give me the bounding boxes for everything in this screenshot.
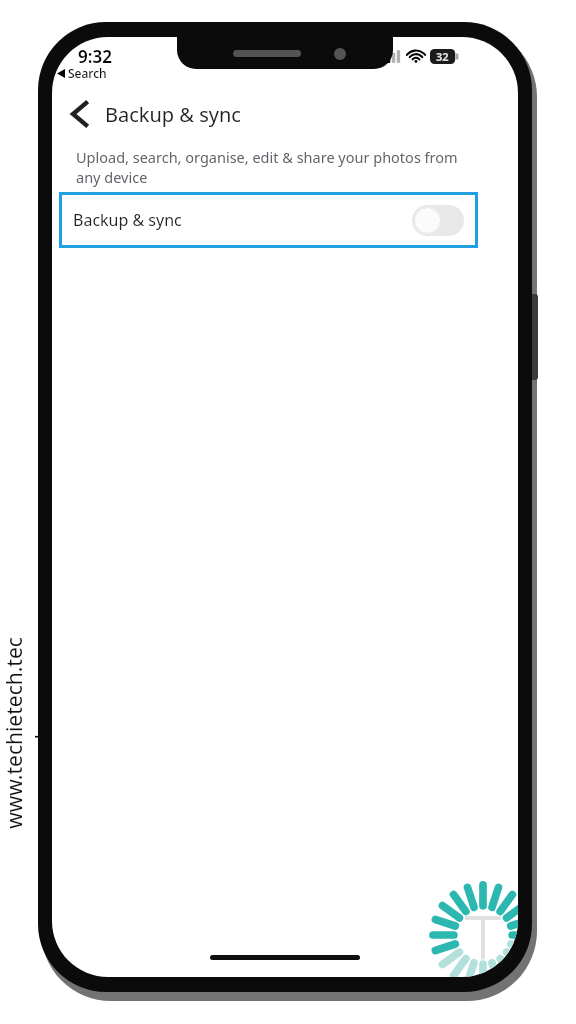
button[interactable]: Backup and sync toggle	[412, 205, 464, 236]
staticText: Backup & sync	[73, 209, 182, 231]
staticText: 32	[436, 49, 449, 64]
staticText: Search	[68, 65, 107, 81]
button[interactable]: Back	[59, 94, 99, 134]
staticText: Upload, search, organise, edit & share y…	[76, 147, 466, 187]
staticText: Backup & sync	[105, 101, 241, 128]
staticText: 9:32	[78, 45, 112, 68]
button[interactable]: Search	[53, 62, 111, 84]
staticText: www.techietech.tech	[0, 633, 46, 833]
button[interactable]: Backup & sync	[59, 192, 478, 248]
